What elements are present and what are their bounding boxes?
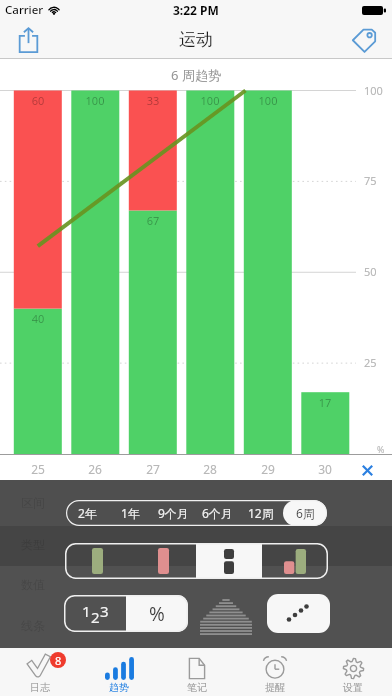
staticText: 25 <box>14 461 62 477</box>
button[interactable]: 1 <box>64 595 126 632</box>
staticText: 100 <box>186 93 234 108</box>
button[interactable]: 9个月 <box>152 500 195 526</box>
button[interactable]: 1年 <box>109 500 152 526</box>
staticText: 1 <box>82 601 91 621</box>
staticText: 100 <box>244 93 292 108</box>
button[interactable]: 6周 <box>283 500 327 526</box>
staticText: 6周 <box>296 505 315 521</box>
staticText: Carrier <box>5 2 44 18</box>
staticText: 67 <box>129 213 177 228</box>
staticText: 3 <box>100 601 109 621</box>
staticText: 8 <box>55 653 62 668</box>
staticText: 日志 <box>30 681 50 694</box>
staticText: 提醒 <box>265 681 285 694</box>
button[interactable]: Close <box>355 458 379 482</box>
button[interactable]: 2年 <box>66 500 109 526</box>
button[interactable]: Trend line style <box>267 594 330 633</box>
button[interactable]: % <box>126 595 188 632</box>
staticText: 6个月 <box>202 505 233 521</box>
staticText: 25 <box>364 355 377 370</box>
button[interactable]: 8 <box>0 648 79 696</box>
staticText: 26 <box>71 461 119 477</box>
button[interactable]: 提醒 <box>236 648 314 696</box>
staticText: 27 <box>129 461 177 477</box>
staticText: 2年 <box>78 505 97 521</box>
button[interactable]: Chart style 2 <box>130 543 196 579</box>
staticText: 笔记 <box>187 681 207 694</box>
staticText: 1年 <box>121 505 140 521</box>
staticText: 12周 <box>248 505 274 521</box>
button[interactable]: Chart style 1 <box>65 543 130 579</box>
staticText: 33 <box>129 93 177 108</box>
staticText: % <box>377 443 385 455</box>
staticText: 75 <box>364 173 377 188</box>
staticText: 29 <box>244 461 292 477</box>
staticText: 100 <box>71 93 119 108</box>
staticText: 40 <box>14 311 62 326</box>
staticText: 9个月 <box>158 505 189 521</box>
staticText: 3:22 PM <box>173 2 219 18</box>
button[interactable]: Share <box>8 20 48 59</box>
staticText: 2 <box>91 607 100 627</box>
button[interactable]: 12周 <box>239 500 283 526</box>
staticText: 50 <box>364 264 377 279</box>
button[interactable]: Stacked style <box>200 598 252 635</box>
button[interactable]: 设置 <box>314 648 392 696</box>
button[interactable]: Tag <box>344 20 384 59</box>
staticText: 17 <box>301 395 349 410</box>
staticText: % <box>149 601 165 627</box>
button[interactable]: 6个月 <box>195 500 239 526</box>
staticText: 设置 <box>343 681 363 694</box>
button[interactable]: Chart style 3 <box>196 543 262 579</box>
staticText: 数值 <box>21 577 45 592</box>
staticText: 区间 <box>21 495 45 510</box>
button[interactable]: 趋势 <box>79 648 158 696</box>
button[interactable]: Chart style 4 <box>262 543 328 579</box>
staticText: 趋势 <box>109 681 129 694</box>
staticText: 6 周趋势 <box>0 66 392 84</box>
button[interactable]: 笔记 <box>158 648 236 696</box>
staticText: 100 <box>364 83 383 98</box>
staticText: 运动 <box>179 29 213 50</box>
staticText: 28 <box>186 461 234 477</box>
staticText: 60 <box>14 93 62 108</box>
staticText: 30 <box>301 461 349 477</box>
